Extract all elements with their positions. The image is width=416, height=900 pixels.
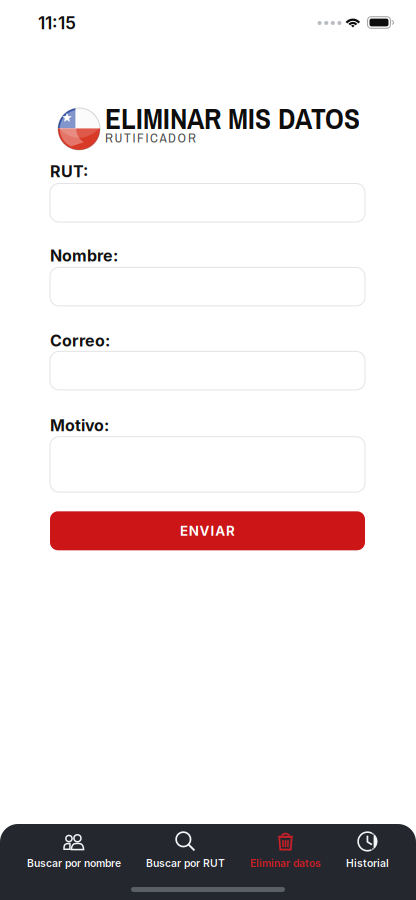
staticText: ENVIAR (180, 523, 235, 539)
button[interactable]: Historial (346, 824, 389, 876)
staticText: RUT: (50, 162, 88, 181)
button[interactable]: Correo (50, 351, 365, 390)
staticText: 11:15 (38, 12, 76, 33)
staticText: Eliminar datos (250, 857, 321, 870)
staticText: RUTIFICADOR (105, 129, 196, 147)
staticText: Buscar por nombre (27, 857, 121, 870)
button[interactable]: Buscar por nombre (27, 824, 121, 876)
staticText: Nombre: (50, 246, 118, 265)
staticText: Correo: (50, 331, 110, 350)
staticText: ELIMINAR MIS DATOS (105, 99, 360, 138)
staticText: Motivo: (50, 416, 109, 435)
staticText: Historial (346, 857, 389, 870)
button[interactable]: Nombre (50, 267, 365, 306)
button[interactable]: Eliminar datos (250, 824, 321, 876)
staticText: Buscar por RUT (146, 857, 225, 870)
button[interactable]: ENVIAR (50, 511, 365, 550)
button[interactable]: Buscar por RUT (146, 824, 225, 876)
